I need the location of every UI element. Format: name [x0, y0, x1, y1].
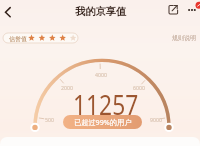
button[interactable]: Back	[0, 2, 22, 20]
button[interactable]: 已超过99%的用户	[63, 115, 142, 129]
button[interactable]: 规则说明	[172, 34, 196, 42]
button[interactable]: More options	[185, 0, 200, 16]
staticText: 信誉值	[9, 35, 27, 43]
staticText: 11257	[73, 86, 139, 123]
staticText: 已超过99%的用户	[74, 117, 132, 127]
staticText: 我的京享值	[75, 5, 126, 18]
staticText: 2000	[61, 84, 73, 91]
button[interactable]: Share	[166, 2, 182, 20]
button[interactable]: 信誉值	[3, 33, 78, 43]
staticText: 500	[45, 116, 54, 123]
staticText: 6000	[133, 84, 145, 91]
staticText: 4000	[95, 71, 107, 78]
staticText: 9000	[150, 116, 162, 123]
